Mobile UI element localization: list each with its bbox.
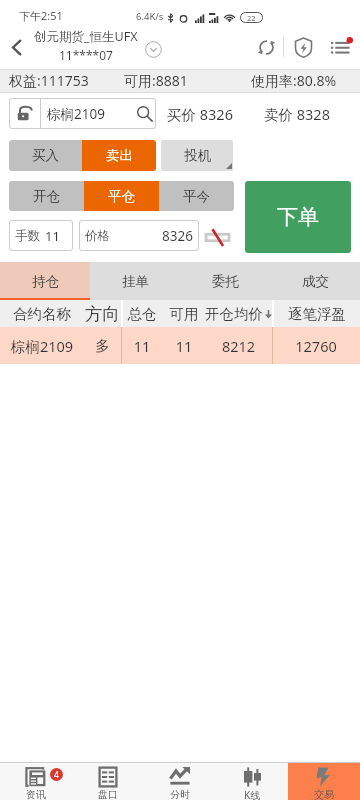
staticText: 4 — [54, 769, 59, 781]
staticText: 权益:111753 — [9, 71, 124, 90]
staticText: 8212 — [205, 336, 272, 356]
button[interactable]: 平今 — [159, 181, 234, 211]
staticText: 成交 — [302, 273, 329, 290]
staticText: 使用率:80.8% — [251, 71, 337, 90]
staticText: K线 — [244, 788, 261, 800]
staticText: 总仓 — [121, 305, 163, 323]
staticText: 11 — [163, 336, 205, 356]
button[interactable]: 分时 — [144, 763, 216, 800]
staticText: 可用:8881 — [124, 71, 251, 90]
button[interactable]: 持仓 — [0, 262, 90, 300]
staticText: 多 — [84, 337, 121, 355]
staticText: 方向 — [84, 303, 121, 325]
button[interactable]: Hide keyboard — [204, 222, 231, 249]
staticText: 资讯 — [26, 788, 46, 800]
staticText: 合约名称 — [0, 305, 84, 323]
button[interactable]: 成交 — [270, 262, 360, 300]
staticText: 11 — [121, 336, 163, 356]
staticText: 8326 — [162, 227, 193, 245]
button[interactable]: 棕榈2109 — [0, 327, 360, 364]
staticText: 11 — [45, 227, 60, 245]
button[interactable]: 交易 — [288, 763, 360, 800]
button[interactable]: 委托 — [180, 262, 270, 300]
button[interactable]: 挂单 — [90, 262, 180, 300]
staticText: 开仓 — [33, 188, 60, 205]
staticText: 12760 — [272, 336, 360, 356]
button[interactable]: 平仓 — [84, 181, 159, 211]
button[interactable]: 盘口 — [72, 763, 144, 800]
staticText: 买入 — [32, 147, 59, 164]
button[interactable]: 创元期货_恒生UFX — [28, 28, 143, 63]
staticText: 价格 — [85, 228, 110, 244]
staticText: 买价 8326 — [167, 104, 233, 124]
staticText: 开仓均价 — [205, 305, 263, 323]
button[interactable]: 价格 — [79, 220, 199, 251]
staticText: 11****07 — [59, 47, 113, 63]
staticText: 委托 — [212, 273, 239, 290]
staticText: 棕榈2109 — [47, 105, 105, 123]
button[interactable]: 手数 — [9, 220, 73, 251]
button[interactable]: 卖出 — [82, 140, 156, 171]
staticText: 挂单 — [122, 273, 149, 290]
staticText: 盘口 — [98, 788, 118, 800]
staticText: 创元期货_恒生UFX — [34, 28, 138, 45]
staticText: 下单 — [277, 204, 319, 230]
staticText: 分时 — [170, 788, 190, 800]
button[interactable]: Security — [289, 33, 317, 61]
staticText: 卖出 — [106, 147, 133, 164]
button[interactable]: 下单 — [245, 181, 351, 253]
staticText: 持仓 — [32, 273, 59, 290]
button[interactable]: 买入 — [9, 140, 82, 171]
staticText: 手数 — [15, 228, 40, 244]
button[interactable]: 投机 — [161, 140, 233, 171]
staticText: 下午2:51 — [19, 8, 63, 23]
staticText: 交易 — [314, 788, 334, 800]
staticText: 投机 — [184, 147, 211, 164]
button[interactable]: Back — [0, 31, 32, 63]
button[interactable]: 棕榈2109 — [41, 98, 156, 129]
staticText: 卖价 8328 — [264, 104, 330, 124]
staticText: 棕榈2109 — [0, 336, 84, 356]
button[interactable]: Unlock — [9, 98, 40, 129]
button[interactable]: K线 — [216, 763, 288, 800]
staticText: 平今 — [183, 188, 210, 205]
staticText: 6.4K/s — [136, 10, 164, 23]
button[interactable]: Menu — [327, 33, 355, 61]
button[interactable]: 开仓 — [9, 181, 84, 211]
staticText: 逐笔浮盈 — [274, 305, 360, 323]
staticText: 可用 — [163, 305, 205, 323]
button[interactable]: 4 — [0, 763, 72, 800]
staticText: 平仓 — [108, 188, 135, 205]
button[interactable]: Refresh — [252, 33, 280, 61]
staticText: 22 — [247, 13, 256, 23]
